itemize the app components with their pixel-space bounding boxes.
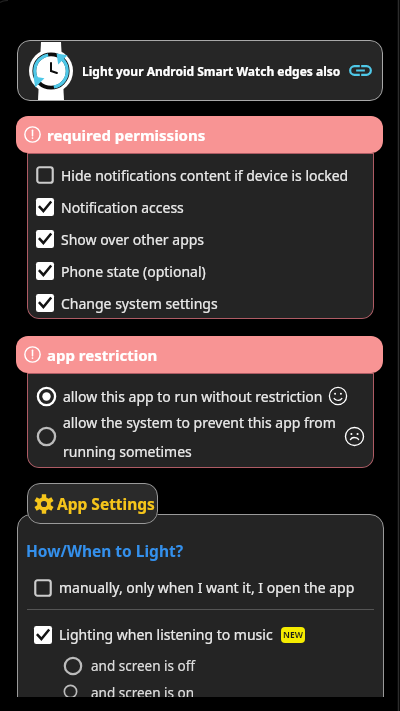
- button[interactable]: Lighting when listening to music: [17, 622, 384, 647]
- staticText: Change system settings: [61, 294, 218, 313]
- staticText: NEW: [283, 629, 303, 641]
- staticText: allow this app to run without restrictio…: [63, 387, 323, 406]
- staticText: Phone state (optional): [61, 262, 206, 281]
- button[interactable]: Notification access: [27, 191, 374, 223]
- staticText: Notification access: [61, 198, 184, 217]
- button[interactable]: Hide notifications content if device is …: [27, 159, 374, 191]
- staticText: Lighting when listening to music: [59, 625, 273, 644]
- staticText: Show over other apps: [61, 230, 205, 249]
- staticText: manually, only when I want it, I open th…: [59, 578, 355, 597]
- staticText: Light your Android Smart Watch edges als…: [82, 63, 347, 79]
- staticText: How/When to Light?: [26, 540, 184, 561]
- button[interactable]: allow this app to run without restrictio…: [27, 379, 374, 413]
- staticText: App Settings: [57, 493, 155, 514]
- button[interactable]: manually, only when I want it, I open th…: [17, 575, 384, 600]
- staticText: Hide notifications content if device is …: [61, 166, 349, 185]
- button[interactable]: Show over other apps: [27, 223, 374, 255]
- button[interactable]: required permissions: [16, 116, 383, 153]
- button[interactable]: and screen is off: [17, 653, 384, 678]
- button[interactable]: and screen is on: [17, 684, 384, 699]
- staticText: app restriction: [47, 345, 158, 365]
- button[interactable]: Light your Android Smart Watch edges als…: [17, 40, 383, 101]
- button[interactable]: App Settings: [27, 483, 158, 524]
- button[interactable]: Phone state (optional): [27, 255, 374, 287]
- button[interactable]: app restriction: [16, 336, 383, 373]
- button[interactable]: Change system settings: [27, 287, 374, 319]
- button[interactable]: allow the system to prevent this app fro…: [27, 413, 374, 460]
- staticText: and screen is off: [91, 657, 195, 675]
- button[interactable]: Open link: [349, 59, 374, 82]
- staticText: required permissions: [47, 125, 206, 145]
- staticText: allow the system to prevent this app fro…: [63, 413, 340, 460]
- staticText: and screen is on: [91, 684, 195, 699]
